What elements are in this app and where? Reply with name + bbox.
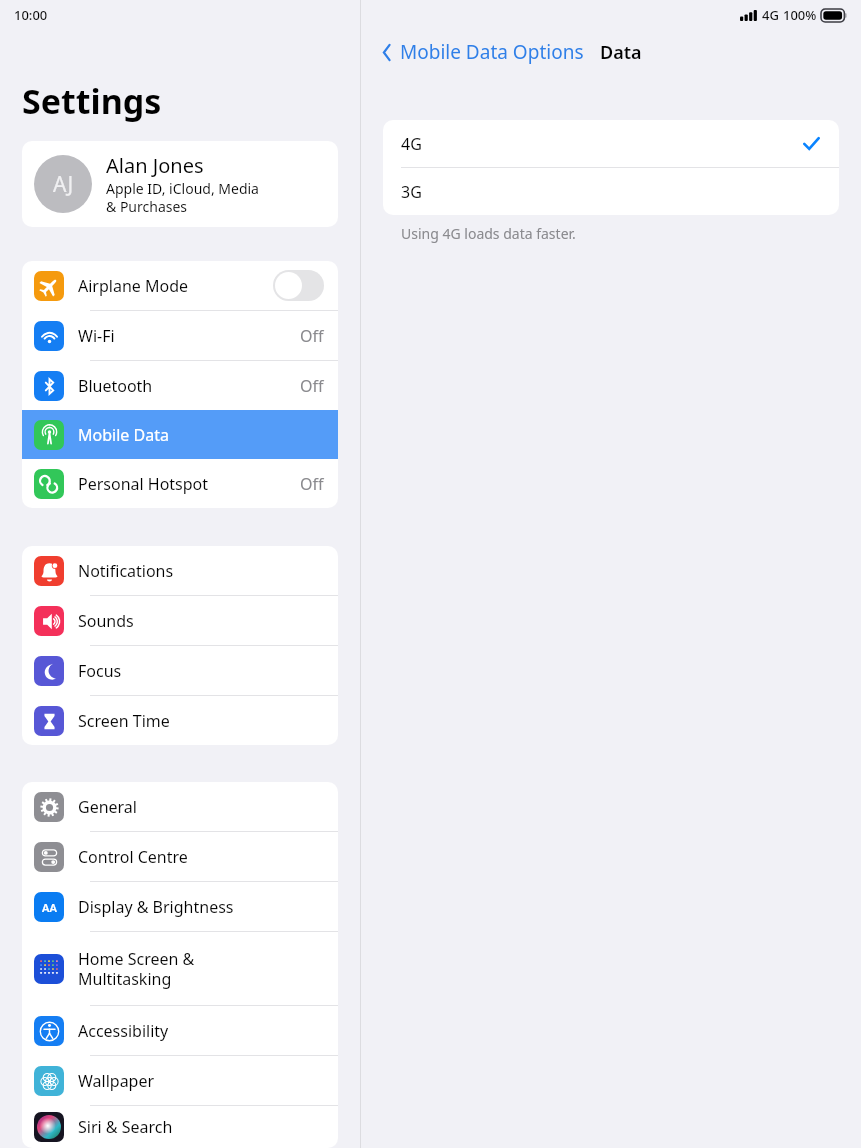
button[interactable]: Airplane Mode toggle [273,270,324,301]
button[interactable]: AA [22,882,338,931]
staticText: AJ [53,170,74,199]
button[interactable]: Sounds [22,596,338,645]
button[interactable]: Mobile Data Options [377,35,588,69]
button[interactable]: 4G [383,120,839,167]
staticText: Notifications [78,560,324,582]
button[interactable]: Wi-Fi [22,311,338,360]
staticText: 100% [783,6,817,24]
staticText: 4G [762,6,779,24]
staticText: Settings [22,78,162,124]
staticText: Mobile Data Options [400,39,584,65]
staticText: Home Screen & Multitasking [78,948,324,989]
staticText: 4G [401,133,802,155]
staticText: Airplane Mode [78,275,273,297]
staticText: Data [600,40,642,65]
staticText: 10:00 [14,6,48,24]
button[interactable]: Bluetooth [22,361,338,410]
button[interactable]: Home Screen & Multitasking [22,932,338,1005]
staticText: Off [300,473,324,495]
button[interactable]: Siri & Search [22,1106,338,1148]
button[interactable]: Screen Time [22,696,338,745]
button[interactable]: 3G [383,168,839,215]
staticText: Wi-Fi [78,325,300,347]
button[interactable]: Wallpaper [22,1056,338,1105]
staticText: General [78,796,324,818]
button[interactable]: Airplane Mode [22,261,338,310]
button[interactable]: Personal Hotspot [22,459,338,508]
button[interactable]: Accessibility [22,1006,338,1055]
staticText: Mobile Data [78,424,324,446]
staticText: Wallpaper [78,1070,324,1092]
button[interactable]: Control Centre [22,832,338,881]
button[interactable]: General [22,782,338,831]
staticText: Display & Brightness [78,896,324,918]
staticText: Alan Jones [106,152,204,179]
button[interactable]: Focus [22,646,338,695]
button[interactable]: Notifications [22,546,338,595]
staticText: Off [300,375,324,397]
staticText: Sounds [78,610,324,632]
staticText: Focus [78,660,324,682]
button[interactable]: Mobile Data [22,410,338,459]
staticText: Apple ID, iCloud, Media & Purchases [106,179,259,216]
staticText: Control Centre [78,846,324,868]
button[interactable]: AJ [22,141,338,227]
staticText: Bluetooth [78,375,300,397]
staticText: AA [42,900,57,915]
staticText: Personal Hotspot [78,473,300,495]
staticText: Using 4G loads data faster. [401,224,576,243]
staticText: 3G [401,181,821,203]
staticText: Screen Time [78,710,324,732]
staticText: Siri & Search [78,1116,324,1138]
staticText: Accessibility [78,1020,324,1042]
staticText: Off [300,325,324,347]
